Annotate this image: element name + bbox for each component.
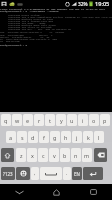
staticText: CHK include/linux/version.h CC kernel [0,30,65,33]
button[interactable]: z [16,148,26,162]
button[interactable]: t [45,114,55,126]
staticText: h [64,134,68,141]
staticText: c [42,152,45,159]
staticText: checking for a BSD-compatible install pr… [8,15,112,18]
button[interactable]: o [89,114,99,126]
staticText: checking build system... [8,13,45,16]
staticText: r [38,117,41,124]
staticText: LD build/arm [0,39,20,42]
staticText: y [60,117,63,124]
button[interactable]: EN [72,167,82,180]
button[interactable]: Recents [75,184,112,200]
button[interactable]: f [39,131,49,143]
button[interactable]: r [34,114,44,126]
button[interactable]: , [31,167,39,180]
button[interactable]: Hide keyboard [0,184,38,200]
staticText: q [4,117,8,124]
button[interactable]: b [60,148,70,162]
staticText: x [31,152,34,159]
button[interactable]: y [56,114,66,126]
staticText: Linux localhost 3.4.0-g0a9b123 #1 SMP PR… [0,7,106,10]
staticText: f [43,134,45,141]
staticText: s [21,134,24,141]
button[interactable]: w [12,114,22,126]
staticText: checking whether build is sane [8,17,54,20]
staticText: checking for style of include [8,25,52,28]
button[interactable]: Backspace [94,148,107,162]
staticText: m [84,152,90,159]
staticText: , [34,170,36,177]
staticText: u [70,117,74,124]
button[interactable]: d [28,131,38,143]
staticText: HOSTCC scripts/basic CC ar [0,35,50,38]
staticText: a [9,134,13,141]
staticText: b [63,152,67,159]
button[interactable]: v [49,148,59,162]
staticText: UPD include/gen HOSTCC s [0,33,53,36]
button[interactable]: q [1,114,11,126]
button[interactable]: s [17,131,27,143]
button[interactable]: k [83,131,93,143]
staticText: ?123 [3,171,13,177]
staticText: checking for a thread-safe mkd [8,19,54,22]
staticText: d [31,134,35,141]
staticText: root@localhost:/ # [0,43,29,46]
button[interactable]: h [61,131,71,143]
staticText: v [53,152,56,159]
staticText: root@localhost:/ # ./configure --enable [0,9,59,12]
button[interactable]: c [38,148,48,162]
button[interactable]: Home [38,184,75,200]
button[interactable]: p [100,114,110,126]
staticText: EN [74,171,80,177]
staticText: 19:05 [95,0,110,8]
button[interactable]: i [78,114,88,126]
staticText: n [74,152,78,159]
staticText: j [76,134,78,141]
staticText: k [87,134,90,141]
staticText: e [26,117,30,124]
staticText: i [82,117,84,124]
button[interactable]: n [71,148,81,162]
staticText: p [103,117,107,124]
staticText: o [92,117,96,124]
button[interactable]: m [82,148,92,162]
button[interactable]: Enter [83,167,103,180]
staticText: checking for gcc... gcc and ld version o… [8,27,72,30]
staticText: checking for gawk... mawk [8,21,46,24]
button[interactable]: j [72,131,82,143]
staticText: checking whether make sets $(MAK [8,23,57,26]
staticText: g [53,134,57,141]
staticText: w [15,117,20,124]
button[interactable]: Space [40,167,62,180]
staticText: t [49,117,51,124]
button[interactable]: l [94,131,104,143]
staticText: z [20,152,23,159]
button[interactable]: Emoji [16,167,30,180]
staticText: CC arch/arm/kernel/asm-offsets.o GEN [0,37,58,40]
button[interactable]: a [6,131,16,143]
staticText: . [66,170,68,177]
button[interactable]: ?123 [1,167,15,180]
button[interactable]: e [23,114,33,126]
button[interactable]: u [67,114,77,126]
button[interactable]: x [27,148,37,162]
button[interactable]: Shift [1,148,14,162]
staticText: 32% [78,1,88,8]
button[interactable]: . [63,167,71,180]
button[interactable]: g [50,131,60,143]
staticText: l [98,134,100,141]
